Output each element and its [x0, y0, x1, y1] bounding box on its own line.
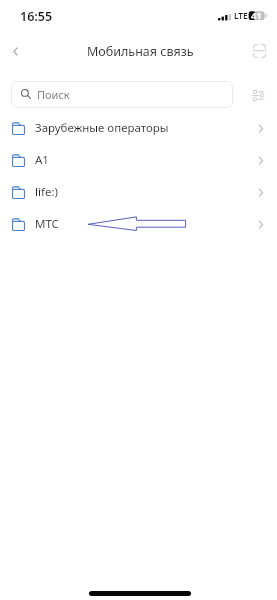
button[interactable]: Back — [0, 36, 30, 66]
staticText: A1 — [35, 152, 256, 168]
staticText: Мобильная связь — [87, 43, 194, 60]
button[interactable]: Зарубежные операторы — [0, 112, 277, 144]
button[interactable]: A1 — [0, 144, 277, 176]
button[interactable]: Scan — [246, 38, 272, 64]
staticText: LTE — [234, 10, 248, 21]
staticText: Зарубежные операторы — [35, 120, 256, 136]
staticText: 16:55 — [20, 8, 53, 25]
button[interactable]: МТС — [0, 208, 277, 240]
button[interactable]: life:) — [0, 176, 277, 208]
staticText: life:) — [35, 184, 256, 200]
button[interactable]: Filter — [245, 82, 271, 108]
staticText: 41 — [251, 9, 262, 22]
staticText: МТС — [35, 216, 256, 232]
button[interactable]: Поиск — [11, 81, 233, 108]
staticText: Поиск — [37, 87, 70, 102]
